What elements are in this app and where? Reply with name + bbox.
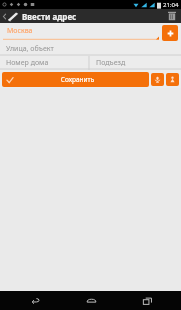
button[interactable]: Подъезд: [90, 56, 181, 70]
button[interactable]: Недавние приложения: [129, 291, 165, 310]
button[interactable]: Голосовой ввод: [151, 73, 164, 86]
staticText: Сохранить: [14, 75, 141, 84]
staticText: Улица, объект: [6, 44, 54, 54]
button[interactable]: Москва: [3, 23, 159, 42]
staticText: 21:04: [163, 1, 179, 9]
staticText: Подъезд: [96, 58, 126, 68]
staticText: Ввести адрес: [22, 11, 77, 22]
button[interactable]: Домой: [73, 291, 109, 310]
button[interactable]: Назад: [0, 9, 22, 23]
button[interactable]: Удалить: [163, 9, 181, 23]
button[interactable]: Выбрать из контактов: [166, 73, 179, 86]
staticText: Москва: [7, 26, 33, 36]
button[interactable]: Сохранить: [2, 72, 149, 87]
staticText: Номер дома: [6, 58, 49, 68]
button[interactable]: Номер дома: [0, 56, 90, 70]
button[interactable]: Назад: [17, 291, 53, 310]
button[interactable]: Добавить: [162, 25, 178, 41]
button[interactable]: Улица, объект: [0, 42, 181, 56]
